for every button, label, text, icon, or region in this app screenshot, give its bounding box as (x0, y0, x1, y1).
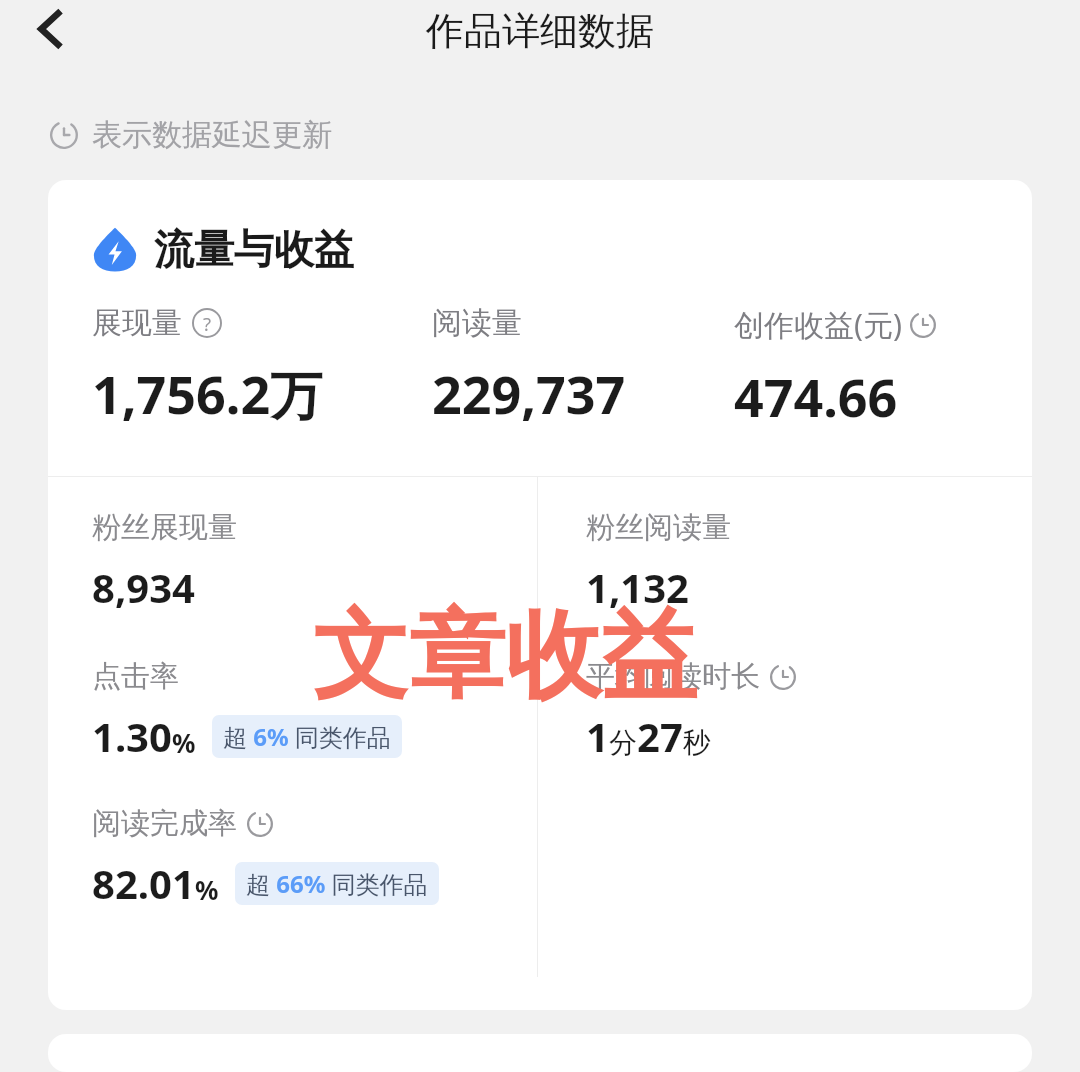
staticText: ? (203, 311, 212, 336)
staticText: 阅读完成率 (92, 805, 237, 842)
staticText: 作品详细数据 (426, 7, 654, 55)
staticText: % (172, 725, 196, 760)
button[interactable]: 流量与收益 (92, 224, 354, 274)
staticText: 表示数据延迟更新 (92, 116, 332, 154)
staticText: 1,132 (586, 560, 689, 614)
button[interactable]: 表示数据延迟更新 (50, 116, 332, 154)
button[interactable]: 返回 (14, 3, 86, 75)
staticText: 474.66 (734, 361, 898, 432)
staticText: 229,737 (432, 358, 626, 429)
other: 流量与收益 (92, 226, 138, 272)
staticText: 1 (586, 709, 609, 763)
staticText: 秒 (683, 725, 711, 760)
staticText: 粉丝展现量 (92, 509, 237, 546)
staticText: 1.30 (92, 709, 172, 763)
staticText: 82.01 (92, 856, 195, 910)
other: 帮助 (192, 308, 222, 338)
staticText: 点击率 (92, 658, 179, 695)
staticText: 展现量 (92, 304, 182, 342)
staticText: 27 (637, 709, 683, 763)
staticText: 1,756.2万 (92, 358, 323, 429)
staticText: 超 6% 同类作品 (223, 720, 391, 753)
button[interactable]: 超 66% 同类作品 (235, 862, 439, 905)
staticText: 平均阅读时长 (586, 658, 760, 695)
staticText: 阅读量 (432, 304, 522, 342)
staticText: 分 (609, 725, 637, 760)
staticText: 流量与收益 (154, 224, 354, 274)
staticText: % (195, 872, 219, 907)
staticText: 粉丝阅读量 (586, 509, 731, 546)
button[interactable]: 超 6% 同类作品 (212, 715, 402, 758)
staticText: 8,934 (92, 560, 195, 614)
staticText: 超 66% 同类作品 (246, 867, 428, 900)
staticText: 文章收益 (313, 596, 697, 717)
staticText: 创作收益(元) (734, 304, 902, 345)
